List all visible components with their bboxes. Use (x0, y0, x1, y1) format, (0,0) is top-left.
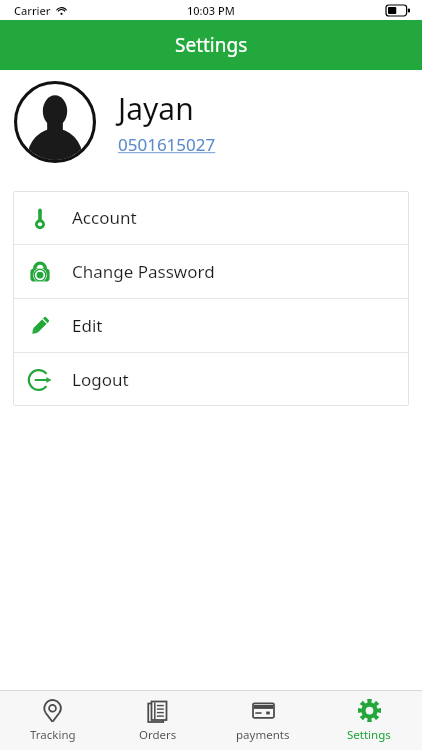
staticText: 10:03 PM (187, 3, 235, 18)
button[interactable]: Account (13, 191, 409, 244)
staticText: Carrier (14, 3, 51, 18)
staticText: Settings (347, 727, 391, 743)
staticText: 0501615027 (118, 133, 216, 156)
staticText: Edit (72, 314, 103, 337)
button[interactable]: 0501615027 (118, 133, 216, 156)
staticText: Jayan (118, 88, 194, 129)
button[interactable]: Change Password (13, 245, 409, 298)
button[interactable]: Tracking (0, 691, 105, 750)
staticText: Orders (139, 727, 177, 743)
button[interactable]: Logout (13, 353, 409, 406)
button[interactable]: Settings (316, 691, 422, 750)
staticText: Settings (175, 32, 248, 58)
other: Profile photo (14, 81, 96, 163)
button[interactable]: payments (210, 691, 316, 750)
staticText: Tracking (30, 727, 76, 743)
button[interactable]: Orders (105, 691, 210, 750)
staticText: Change Password (72, 260, 215, 283)
staticText: Account (72, 206, 137, 229)
staticText: payments (236, 727, 290, 743)
staticText: Logout (72, 368, 129, 391)
button[interactable]: Edit (13, 299, 409, 352)
